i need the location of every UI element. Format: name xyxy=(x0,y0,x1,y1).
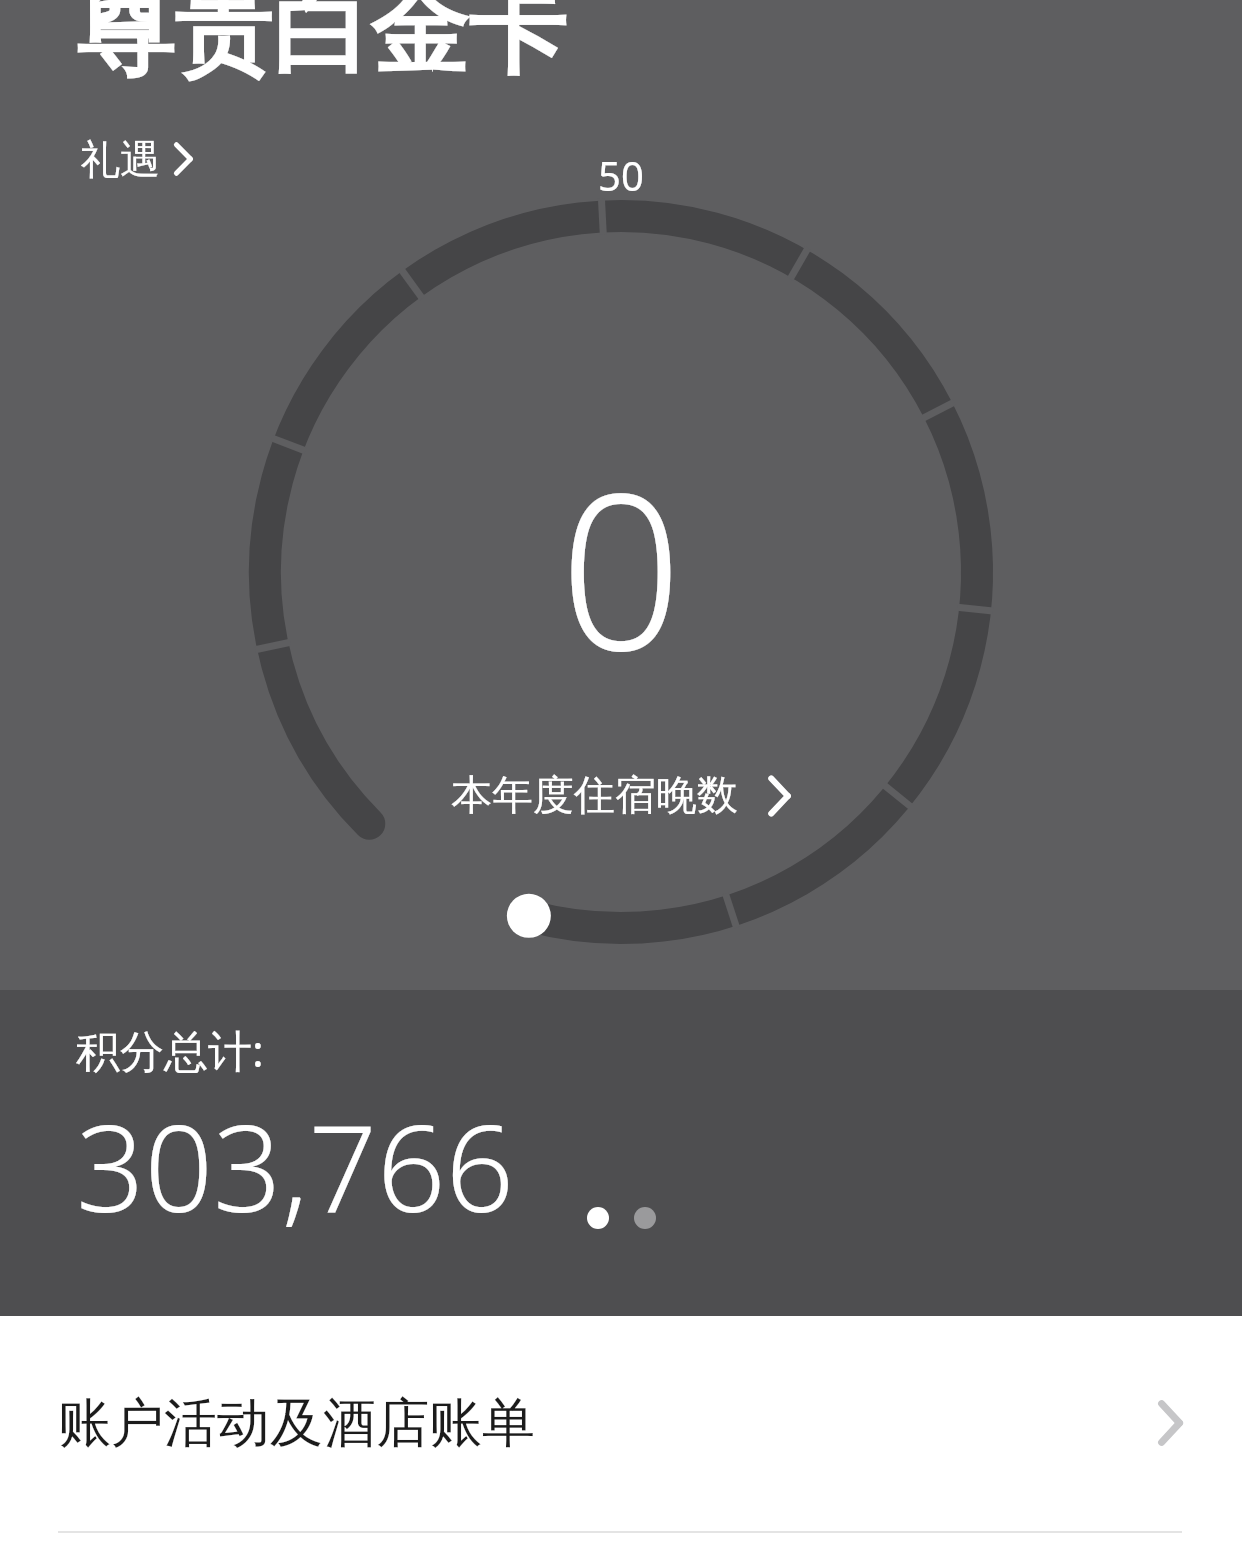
button[interactable]: 账户活动及酒店账单 xyxy=(0,1316,1242,1530)
button[interactable]: 礼遇 xyxy=(76,128,198,190)
staticText: 尊贵白金卡 xyxy=(76,0,566,93)
staticText: 礼遇 xyxy=(80,134,160,184)
staticText: 0 xyxy=(421,420,821,713)
staticText: 50 xyxy=(561,148,681,202)
button[interactable]: 本年度住宿晚数 xyxy=(437,762,806,830)
other: 账户活动及酒店账单 xyxy=(1156,1400,1184,1446)
staticText: 账户活动及酒店账单 xyxy=(58,1390,1156,1457)
staticText: 积分总计: xyxy=(76,1020,264,1080)
staticText: 本年度住宿晚数 xyxy=(451,770,738,822)
staticText: 303,766 xyxy=(76,1084,515,1247)
